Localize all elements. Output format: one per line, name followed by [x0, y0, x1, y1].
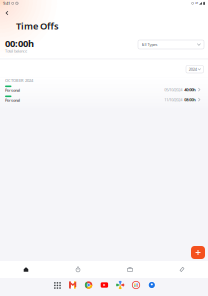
button[interactable]: Personal: [0, 94, 208, 104]
staticText: All Types: [141, 42, 157, 47]
button[interactable]: Work: [104, 261, 156, 278]
staticText: 9:41: [3, 1, 10, 6]
staticText: 00:00h: [5, 37, 34, 50]
staticText: 2024: [189, 67, 197, 72]
button[interactable]: Back: [1, 8, 13, 18]
staticText: LTE: [195, 1, 198, 5]
button[interactable]: 2024: [186, 65, 203, 73]
button[interactable]: Personal: [0, 84, 208, 94]
button[interactable]: Time tracking: [52, 261, 104, 278]
button[interactable]: All Types: [138, 40, 204, 49]
button[interactable]: Home: [0, 261, 52, 278]
staticText: 05/10/2024: [164, 87, 182, 92]
staticText: Time Offs: [16, 20, 59, 32]
staticText: Total balance: [5, 48, 27, 54]
button[interactable]: Documents: [156, 261, 208, 278]
staticText: 08:00h: [184, 97, 196, 102]
staticText: 11/10/2024: [164, 97, 182, 102]
staticText: 40:00h: [184, 87, 196, 92]
staticText: OCTOBER 2024: [5, 78, 33, 83]
staticText: Personal: [5, 97, 20, 103]
staticText: Personal: [5, 87, 20, 93]
button[interactable]: Add time off: [191, 246, 205, 259]
